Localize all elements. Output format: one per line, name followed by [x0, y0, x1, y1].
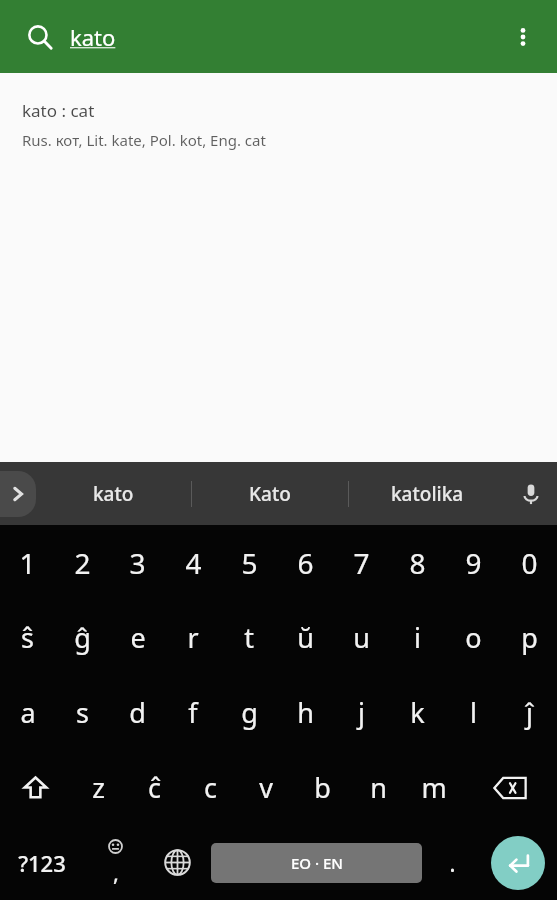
button[interactable]: f: [165, 675, 221, 750]
staticText: b: [314, 769, 331, 806]
button[interactable]: ?123: [0, 825, 84, 900]
button[interactable]: 6: [277, 525, 333, 600]
button[interactable]: 4: [165, 525, 221, 600]
staticText: e: [130, 619, 146, 656]
button[interactable]: Expand suggestions: [0, 471, 36, 517]
button[interactable]: t: [221, 600, 277, 675]
staticText: 5: [241, 544, 258, 582]
button[interactable]: Search: [18, 15, 62, 59]
button[interactable]: 7: [333, 525, 389, 600]
button[interactable]: n: [350, 750, 406, 825]
staticText: EO · EN: [291, 853, 343, 873]
button[interactable]: EO · EN: [211, 843, 422, 883]
button[interactable]: h: [277, 675, 333, 750]
button[interactable]: m: [406, 750, 462, 825]
staticText: t: [244, 619, 254, 656]
button[interactable]: u: [333, 600, 389, 675]
button[interactable]: d: [110, 675, 165, 750]
staticText: ĉ: [148, 769, 161, 806]
staticText: f: [188, 694, 198, 731]
staticText: ?123: [18, 848, 66, 878]
button[interactable]: b: [294, 750, 350, 825]
button[interactable]: o: [445, 600, 501, 675]
staticText: n: [370, 769, 387, 806]
button[interactable]: c: [182, 750, 238, 825]
staticText: u: [353, 619, 370, 656]
staticText: k: [410, 694, 425, 731]
button[interactable]: Change keyboard language: [146, 825, 208, 900]
staticText: ,: [113, 857, 119, 887]
button[interactable]: l: [445, 675, 501, 750]
button[interactable]: Kato: [192, 462, 348, 525]
staticText: kato: [70, 22, 116, 52]
button[interactable]: 2: [55, 525, 110, 600]
staticText: r: [187, 619, 199, 656]
button[interactable]: g: [221, 675, 277, 750]
button[interactable]: More options: [501, 15, 545, 59]
staticText: p: [521, 619, 538, 656]
button[interactable]: z: [71, 750, 126, 825]
staticText: s: [76, 694, 89, 731]
staticText: ĝ: [74, 619, 91, 656]
button[interactable]: kato: [70, 22, 501, 52]
button[interactable]: 5: [221, 525, 277, 600]
staticText: h: [297, 694, 314, 731]
button[interactable]: 3: [110, 525, 165, 600]
button[interactable]: s: [55, 675, 110, 750]
button[interactable]: i: [389, 600, 445, 675]
staticText: 9: [465, 544, 482, 582]
staticText: 3: [129, 544, 146, 582]
staticText: 4: [185, 544, 202, 582]
button[interactable]: v: [238, 750, 294, 825]
staticText: kato : cat: [22, 99, 95, 122]
staticText: a: [20, 694, 36, 731]
button[interactable]: Emoji and comma: [84, 825, 146, 900]
staticText: ĵ: [526, 694, 533, 731]
staticText: l: [470, 694, 477, 731]
button[interactable]: ŝ: [0, 600, 55, 675]
staticText: .: [449, 846, 456, 879]
staticText: 0: [521, 544, 538, 582]
button[interactable]: k: [389, 675, 445, 750]
button[interactable]: 9: [445, 525, 501, 600]
button[interactable]: Voice input: [505, 462, 557, 525]
button[interactable]: 1: [0, 525, 55, 600]
button[interactable]: ĵ: [501, 675, 557, 750]
button[interactable]: a: [0, 675, 55, 750]
staticText: Rus. кот, Lit. kate, Pol. kot, Eng. cat: [22, 130, 266, 150]
button[interactable]: Enter: [491, 836, 545, 890]
button[interactable]: kato: [36, 462, 191, 525]
button[interactable]: j: [333, 675, 389, 750]
staticText: g: [241, 694, 258, 731]
button[interactable]: 8: [389, 525, 445, 600]
button[interactable]: ĝ: [55, 600, 110, 675]
staticText: i: [414, 619, 421, 656]
staticText: 1: [19, 544, 36, 582]
staticText: ŝ: [21, 619, 34, 656]
staticText: ŭ: [297, 619, 314, 656]
button[interactable]: ŭ: [277, 600, 333, 675]
staticText: m: [421, 769, 447, 806]
button[interactable]: Backspace: [462, 750, 557, 825]
staticText: 2: [74, 544, 91, 582]
staticText: 8: [409, 544, 426, 582]
staticText: c: [204, 769, 217, 806]
staticText: v: [259, 769, 273, 806]
staticText: katolika: [391, 481, 464, 507]
button[interactable]: p: [501, 600, 557, 675]
button[interactable]: r: [165, 600, 221, 675]
staticText: Kato: [249, 481, 291, 507]
button[interactable]: kato : cat: [0, 73, 557, 162]
staticText: j: [358, 694, 365, 731]
button[interactable]: 0: [501, 525, 557, 600]
staticText: 7: [353, 544, 370, 582]
button[interactable]: e: [110, 600, 165, 675]
button[interactable]: Shift: [0, 750, 71, 825]
staticText: d: [129, 694, 146, 731]
button[interactable]: ĉ: [126, 750, 182, 825]
staticText: kato: [93, 481, 134, 507]
staticText: 6: [297, 544, 314, 582]
button[interactable]: katolika: [349, 462, 505, 525]
button[interactable]: .: [425, 825, 479, 900]
staticText: o: [465, 619, 482, 656]
